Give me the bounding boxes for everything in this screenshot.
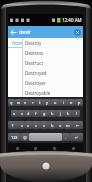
button[interactable]: m <box>64 121 72 129</box>
button[interactable]: Back <box>8 27 19 38</box>
button[interactable]: Clear search <box>71 26 83 38</box>
staticText: a <box>13 111 16 116</box>
staticText: v <box>43 123 45 128</box>
staticText: g <box>43 111 46 116</box>
staticText: h <box>51 111 54 116</box>
staticText: r <box>32 100 34 105</box>
staticText: Destress <box>25 50 44 56</box>
button[interactable]: r <box>29 99 36 106</box>
button[interactable]: i <box>59 99 67 106</box>
button[interactable]: Destroyed <box>23 68 83 78</box>
button[interactable]: y <box>43 99 51 106</box>
button[interactable]: Destroyer <box>23 78 83 88</box>
button[interactable]: z <box>18 121 25 129</box>
staticText: x <box>27 123 30 128</box>
staticText: o <box>70 100 73 105</box>
button[interactable]: n <box>56 121 64 129</box>
button[interactable]: b <box>48 121 56 129</box>
staticText: j <box>60 111 61 116</box>
staticText: 12:40 AM <box>62 17 82 23</box>
button[interactable]: t <box>36 99 43 106</box>
staticText: w <box>17 100 20 105</box>
staticText: destr <box>19 29 32 36</box>
staticText: ← <box>76 123 80 127</box>
staticText: l <box>76 111 77 116</box>
staticText: Destruct <box>25 60 44 66</box>
button[interactable]: e <box>22 99 29 106</box>
staticText: n <box>59 123 62 128</box>
staticText: y <box>46 100 48 105</box>
button[interactable] <box>29 133 62 141</box>
staticText: Destroyable <box>25 90 51 96</box>
staticText: s <box>21 111 23 116</box>
button[interactable]: w <box>15 99 22 106</box>
staticText: e <box>24 100 27 105</box>
button[interactable]: h <box>48 110 56 117</box>
button[interactable]: Home <box>26 143 45 153</box>
button[interactable]: q <box>8 99 15 106</box>
staticText: . <box>65 135 67 140</box>
staticText: d <box>27 111 30 116</box>
staticText: t <box>39 100 41 105</box>
button[interactable]: p <box>75 99 83 106</box>
button[interactable]: . <box>62 133 70 141</box>
button[interactable]: l <box>72 110 80 117</box>
button[interactable]: Destroyable <box>23 88 83 97</box>
button[interactable]: Search <box>64 143 83 153</box>
staticText: ↵ <box>75 135 79 139</box>
button[interactable]: x <box>25 121 32 129</box>
staticText: ☺ <box>23 135 27 139</box>
button[interactable]: Destroy <box>23 38 83 48</box>
button[interactable]: a <box>11 110 18 117</box>
button[interactable]: ↑ <box>8 121 18 129</box>
button[interactable]: Destress <box>23 48 83 58</box>
button[interactable]: g <box>40 110 48 117</box>
button[interactable]: s <box>18 110 25 117</box>
staticText: m <box>66 123 70 128</box>
staticText: k <box>67 111 70 116</box>
staticText: Destroy <box>25 40 42 46</box>
button[interactable]: Home <box>8 38 28 47</box>
staticText: Destroyed <box>25 70 47 76</box>
staticText: f <box>35 111 37 116</box>
button[interactable]: u <box>51 99 59 106</box>
button[interactable]: c <box>32 121 40 129</box>
staticText: b <box>51 123 54 128</box>
staticText: Home <box>12 40 25 46</box>
staticText: u <box>54 100 57 105</box>
button[interactable]: 123 <box>8 133 21 141</box>
staticText: z <box>21 123 23 128</box>
staticText: q <box>10 100 13 105</box>
button[interactable]: Back <box>8 143 26 153</box>
button[interactable]: k <box>64 110 72 117</box>
staticText: c <box>35 123 37 128</box>
button[interactable]: j <box>56 110 64 117</box>
button[interactable]: ☺ <box>21 133 29 141</box>
button[interactable]: d <box>25 110 32 117</box>
staticText: 123 <box>11 135 18 140</box>
staticText: p <box>78 100 81 105</box>
button[interactable]: v <box>40 121 48 129</box>
button[interactable]: f <box>32 110 40 117</box>
staticText: Destroyer <box>25 80 46 86</box>
staticText: ↑ <box>11 123 15 127</box>
button[interactable]: Destruct <box>23 58 83 68</box>
button[interactable]: ← <box>72 121 83 129</box>
staticText: i <box>63 100 64 105</box>
button[interactable]: ↵ <box>70 133 83 141</box>
button[interactable]: Menu <box>45 143 64 153</box>
button[interactable]: o <box>67 99 75 106</box>
